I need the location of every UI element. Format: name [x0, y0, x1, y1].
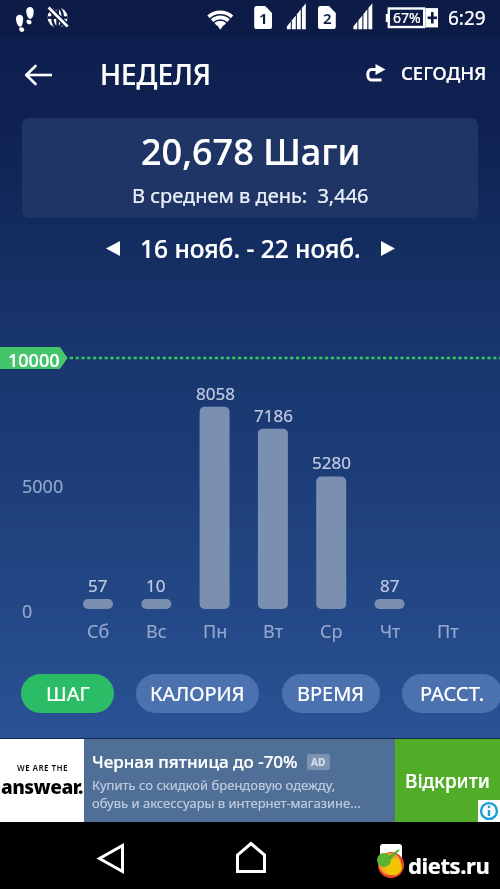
staticText: СЕГОДНЯ: [401, 60, 487, 85]
button[interactable]: diets.ru: [408, 850, 490, 880]
staticText: Ср: [320, 619, 343, 644]
staticText: 1: [259, 8, 268, 28]
staticText: 20,678 Шаги: [141, 127, 361, 176]
staticText: answear.: [1, 774, 83, 800]
staticText: Чт: [380, 619, 401, 644]
button[interactable]: Черная пятница до -70%: [84, 739, 395, 822]
staticText: КАЛОРИЯ: [150, 680, 245, 707]
button[interactable]: ВРЕМЯ: [282, 674, 380, 713]
button[interactable]: Відкрити: [395, 739, 500, 822]
staticText: обувь и аксессуары в интернет-магазине..…: [92, 794, 361, 812]
staticText: 6:29: [448, 5, 486, 31]
staticText: AD: [311, 755, 326, 769]
staticText: WE ARE THE: [17, 762, 68, 773]
button[interactable]: Back: [86, 833, 136, 883]
staticText: 10000: [8, 348, 60, 373]
staticText: Вс: [146, 619, 167, 644]
staticText: Купить со скидкой брендовую одежду,: [92, 776, 336, 794]
staticText: 5280: [312, 451, 351, 474]
staticText: В среднем в день: 3,446: [132, 182, 369, 209]
button[interactable]: 20,678 Шаги: [22, 118, 478, 218]
staticText: 0: [22, 599, 33, 624]
button[interactable]: Back: [16, 52, 62, 98]
staticText: Вт: [263, 619, 284, 644]
staticText: 57: [88, 574, 108, 597]
staticText: 16 нояб. - 22 нояб.: [140, 232, 361, 265]
staticText: ВРЕМЯ: [297, 680, 365, 707]
staticText: 7186: [254, 404, 293, 427]
staticText: Пн: [203, 619, 228, 644]
staticText: 2: [323, 8, 332, 28]
button[interactable]: Next week: [369, 229, 407, 267]
button[interactable]: СЕГОДНЯ: [362, 56, 492, 92]
button[interactable]: Home: [226, 832, 276, 882]
staticText: РАССТ.: [420, 680, 485, 707]
staticText: 87: [380, 574, 400, 597]
staticText: 8058: [196, 382, 235, 405]
staticText: ШАГ: [46, 680, 90, 707]
staticText: Черная пятница до -70%: [92, 750, 298, 773]
button[interactable]: КАЛОРИЯ: [136, 674, 259, 713]
button[interactable]: Previous week: [94, 229, 132, 267]
staticText: 5000: [22, 474, 64, 499]
other: Ad information: [478, 800, 500, 822]
staticText: Сб: [87, 619, 110, 644]
button[interactable]: РАССТ.: [402, 674, 500, 713]
button[interactable]: ШАГ: [21, 674, 114, 713]
staticText: Відкрити: [405, 768, 490, 794]
staticText: НЕДЕЛЯ: [100, 55, 212, 93]
staticText: Пт: [437, 619, 459, 644]
staticText: 10: [146, 574, 166, 597]
staticText: 67%: [393, 8, 421, 27]
